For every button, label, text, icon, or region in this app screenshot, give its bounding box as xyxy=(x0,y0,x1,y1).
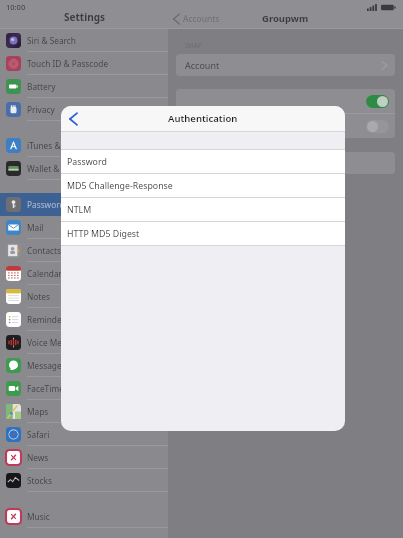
staticText: 10:00 xyxy=(6,2,26,12)
staticText: Settings xyxy=(64,10,105,24)
staticText: Battery xyxy=(27,81,56,92)
button[interactable]: HTTP MD5 Digest xyxy=(61,222,345,245)
staticText: NTLM xyxy=(67,204,92,216)
button[interactable]: Battery xyxy=(0,75,168,98)
staticText: Voice Memos xyxy=(27,337,79,348)
button[interactable]: NTLM xyxy=(61,198,345,221)
staticText: Account xyxy=(185,59,220,71)
button[interactable]: Mail xyxy=(0,216,168,239)
button[interactable] xyxy=(176,152,395,174)
staticText: Notes xyxy=(27,291,50,302)
button[interactable]: Safari xyxy=(0,423,168,446)
other: On xyxy=(366,95,389,108)
staticText: IMAP xyxy=(185,41,202,50)
button[interactable]: Password xyxy=(61,150,345,173)
staticText: Stocks xyxy=(27,475,52,486)
staticText: Messages xyxy=(27,360,66,371)
button[interactable]: Calendar xyxy=(0,262,168,285)
button[interactable]: News xyxy=(0,446,168,469)
staticText: Authentication xyxy=(168,112,238,125)
staticText: Reminders xyxy=(27,314,70,325)
staticText: Password xyxy=(67,156,107,168)
button[interactable]: Music xyxy=(0,505,168,528)
button[interactable]: Maps xyxy=(0,400,168,423)
button[interactable]: Wallet & Apple Pay xyxy=(0,157,168,180)
staticText: News xyxy=(27,452,49,463)
staticText: Accounts xyxy=(183,13,220,25)
button[interactable]: Stocks xyxy=(0,469,168,492)
button[interactable]: Contacts xyxy=(0,239,168,262)
staticText: Touch ID & Passcode xyxy=(27,58,109,69)
staticText: iTunes & App Store xyxy=(27,140,101,151)
staticText: Privacy xyxy=(27,104,55,115)
button[interactable]: Account xyxy=(176,54,395,76)
button[interactable]: FaceTime xyxy=(0,377,168,400)
staticText: MD5 Challenge-Response xyxy=(67,180,173,192)
button[interactable]: Passwords & Accounts xyxy=(0,193,168,216)
button[interactable]: MD5 Challenge-Response xyxy=(61,174,345,197)
staticText: Maps xyxy=(27,406,49,417)
staticText: Calendar xyxy=(27,268,63,279)
staticText: Siri & Search xyxy=(27,35,76,46)
staticText: Passwords & Accounts xyxy=(27,199,115,210)
button[interactable]: Off xyxy=(176,114,395,138)
other: Off xyxy=(366,120,389,133)
staticText: HTTP MD5 Digest xyxy=(67,228,140,240)
button[interactable]: Voice Memos xyxy=(0,331,168,354)
button[interactable]: Notes xyxy=(0,285,168,308)
button[interactable]: Touch ID & Passcode xyxy=(0,52,168,75)
staticText: FaceTime xyxy=(27,383,64,394)
staticText: Groupwm xyxy=(262,12,309,25)
button[interactable]: iTunes & App Store xyxy=(0,134,168,157)
staticText: Safari xyxy=(27,429,50,440)
staticText: Wallet & Apple Pay xyxy=(27,163,100,174)
staticText: Contacts xyxy=(27,245,61,256)
button[interactable]: On xyxy=(176,89,395,113)
button[interactable]: Reminders xyxy=(0,308,168,331)
button[interactable]: Privacy xyxy=(0,98,168,121)
staticText: Music xyxy=(27,511,50,522)
staticText: Mail xyxy=(27,222,44,233)
button[interactable]: Siri & Search xyxy=(0,29,168,52)
button[interactable]: Back xyxy=(61,107,85,131)
button[interactable]: Messages xyxy=(0,354,168,377)
